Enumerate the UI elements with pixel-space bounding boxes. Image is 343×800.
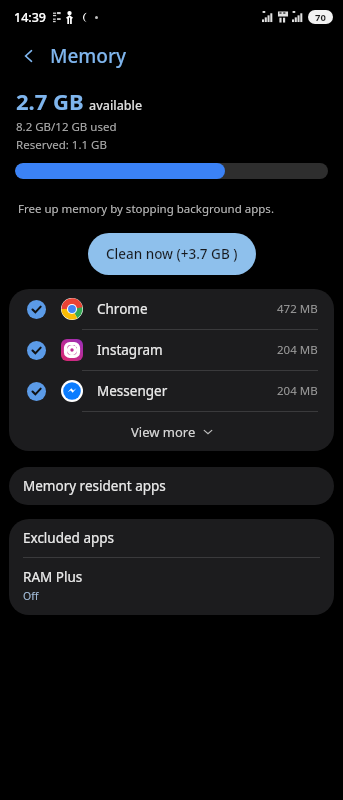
staticText: 472 MB bbox=[277, 301, 318, 317]
staticText: 14:39 bbox=[14, 9, 47, 26]
staticText: RAM Plus bbox=[23, 568, 83, 586]
staticText: Instagram bbox=[97, 341, 163, 359]
staticText: Excluded apps bbox=[23, 529, 115, 547]
button[interactable]: RAM Plus bbox=[9, 558, 334, 615]
staticText: Memory bbox=[50, 43, 127, 69]
button[interactable]: Excluded apps bbox=[9, 519, 334, 557]
staticText: Messenger bbox=[97, 382, 168, 400]
button[interactable]: Memory resident apps bbox=[9, 467, 334, 505]
staticText: Memory resident apps bbox=[23, 477, 166, 495]
button[interactable]: Chrome bbox=[9, 289, 334, 329]
staticText: available bbox=[89, 97, 143, 114]
staticText: Chrome bbox=[97, 300, 148, 318]
staticText: 2.7 GB bbox=[16, 86, 84, 116]
staticText: 8.2 GB/12 GB used bbox=[16, 119, 117, 135]
button[interactable]: Instagram bbox=[9, 330, 334, 370]
button[interactable]: Back bbox=[14, 41, 44, 71]
staticText: 70 bbox=[315, 11, 326, 24]
staticText: Clean now (+3.7 GB ) bbox=[106, 245, 238, 263]
staticText: 204 MB bbox=[277, 383, 318, 399]
staticText: 204 MB bbox=[277, 342, 318, 358]
button[interactable]: View more bbox=[9, 412, 334, 451]
button[interactable]: Clean now (+3.7 GB ) bbox=[88, 233, 256, 275]
button[interactable]: Messenger bbox=[9, 371, 334, 411]
staticText: Free up memory by stopping background ap… bbox=[18, 201, 274, 217]
staticText: Reserved: 1.1 GB bbox=[16, 137, 107, 153]
staticText: View more bbox=[131, 423, 196, 441]
staticText: Off bbox=[23, 589, 39, 603]
